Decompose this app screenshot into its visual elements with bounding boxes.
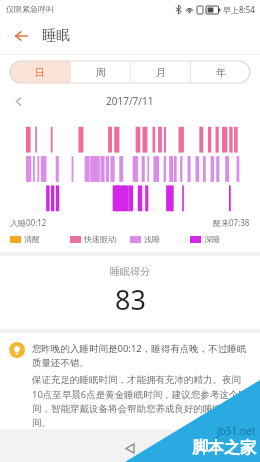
button[interactable]: 年: [191, 61, 250, 83]
staticText: jb51.net: [217, 424, 256, 438]
staticText: 日: [35, 66, 45, 79]
staticText: 醒来07:38: [213, 217, 250, 228]
button[interactable]: Back: [8, 23, 34, 49]
staticText: 年: [216, 66, 226, 79]
staticText: 快速眼动: [84, 234, 116, 244]
staticText: 周: [96, 66, 106, 79]
button[interactable]: 月: [131, 61, 190, 83]
staticText: 您昨晚的入睡时间是00:12，睡得有点晚，不过睡眠质量还不错。: [32, 342, 248, 369]
staticText: 保证充足的睡眠时间，才能拥有充沛的精力。夜间10点至早晨6点是黄金睡眠时间，建议…: [32, 374, 248, 429]
button[interactable]: Back: [118, 436, 142, 460]
staticText: 脚本之家: [192, 438, 256, 458]
staticText: 月: [156, 66, 166, 79]
staticText: 入睡00:12: [10, 217, 47, 228]
staticText: 睡眠得分: [110, 265, 150, 278]
staticText: 仅限紧急呼叫: [6, 4, 54, 14]
staticText: 83: [115, 281, 146, 318]
button[interactable]: Previous day: [8, 91, 28, 111]
staticText: 清醒: [24, 234, 40, 244]
button[interactable]: 周: [71, 61, 130, 83]
staticText: 睡眠: [42, 27, 70, 45]
button[interactable]: 您昨晚的入睡时间是00:12，睡得有点晚，不过睡眠质量还不错。: [9, 342, 248, 429]
staticText: 浅睡: [144, 234, 160, 244]
staticText: 早上8:54: [223, 4, 255, 15]
staticText: 2017/7/11: [106, 94, 154, 108]
button[interactable]: 日: [10, 61, 70, 83]
staticText: 深睡: [204, 234, 220, 244]
